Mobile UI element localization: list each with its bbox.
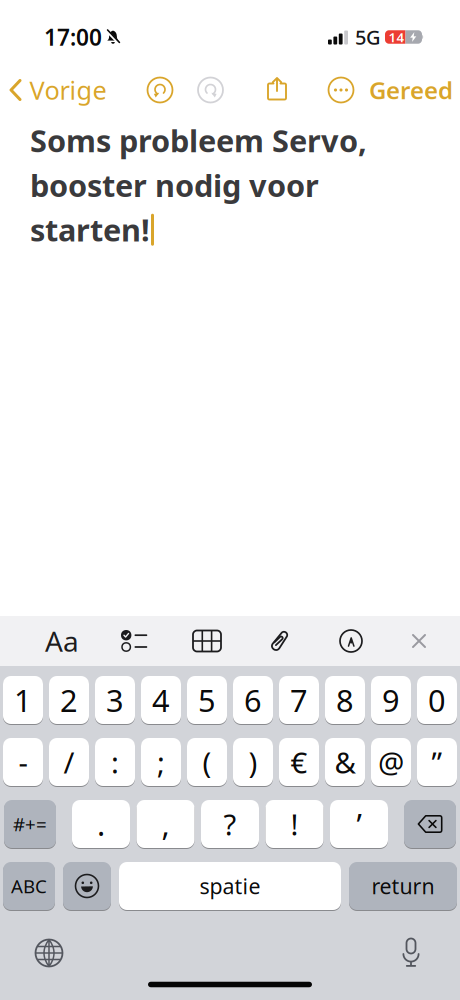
staticText: 6 (244, 680, 262, 720)
button[interactable]: Checklist (112, 619, 156, 663)
staticText: 3 (106, 680, 124, 720)
button[interactable]: 6 (233, 675, 273, 725)
button[interactable]: #+= (4, 799, 56, 849)
button[interactable]: ( (187, 737, 227, 787)
button[interactable]: & (325, 737, 365, 787)
staticText: 14 (388, 28, 404, 46)
button[interactable]: Markup (329, 619, 373, 663)
staticText: ) (248, 742, 257, 781)
button[interactable]: Attach (258, 619, 302, 663)
button[interactable]: Gereed (369, 70, 453, 110)
button[interactable]: : (95, 737, 135, 787)
button[interactable]: ; (141, 737, 181, 787)
button[interactable]: Next keyboard (27, 931, 71, 975)
button[interactable]: Table (185, 619, 229, 663)
button[interactable]: ’ (330, 799, 388, 849)
button[interactable]: More (324, 73, 358, 107)
button[interactable]: 8 (325, 675, 365, 725)
staticText: spatie (199, 872, 260, 900)
staticText: 1 (14, 680, 32, 720)
button[interactable]: ! (265, 799, 323, 849)
staticText: 5G (355, 24, 381, 50)
staticText: 4 (152, 680, 170, 720)
button[interactable]: Delete (404, 799, 456, 849)
staticText: ’ (356, 804, 361, 844)
button[interactable]: 3 (95, 675, 135, 725)
staticText: Vorige (29, 73, 106, 107)
button[interactable]: return (349, 861, 457, 911)
button[interactable]: Vorige (9, 70, 106, 110)
staticText: booster nodig voor (30, 165, 319, 205)
staticText: @ (378, 742, 404, 781)
staticText: Aa (45, 622, 79, 660)
button[interactable]: Undo (143, 73, 177, 107)
staticText: ! (290, 804, 298, 843)
staticText: 0 (428, 680, 446, 720)
button[interactable]: ? (201, 799, 259, 849)
staticText: 9 (382, 680, 400, 720)
staticText: € (290, 742, 307, 781)
button[interactable]: 2 (49, 675, 89, 725)
staticText: #+= (13, 812, 47, 836)
button[interactable]: Dictate (389, 930, 433, 974)
staticText: / (63, 742, 74, 781)
button[interactable]: 0 (417, 675, 457, 725)
staticText: : (111, 742, 119, 781)
staticText: starten! (30, 209, 150, 250)
button[interactable]: ” (417, 737, 457, 787)
button[interactable]: @ (371, 737, 411, 787)
button[interactable]: 1 (3, 675, 43, 725)
button[interactable]: 7 (279, 675, 319, 725)
button[interactable]: 4 (141, 675, 181, 725)
staticText: ” (431, 742, 442, 781)
button[interactable]: , (136, 799, 194, 849)
button[interactable]: € (279, 737, 319, 787)
button[interactable]: ABC (3, 861, 55, 911)
button[interactable]: ) (233, 737, 273, 787)
button[interactable]: Emoji (63, 861, 111, 911)
button[interactable]: Formatting (40, 619, 84, 663)
button[interactable]: spatie (119, 861, 341, 911)
button[interactable]: - (3, 737, 43, 787)
button[interactable]: 9 (371, 675, 411, 725)
staticText: ABC (11, 874, 47, 898)
staticText: Gereed (369, 74, 453, 106)
staticText: 7 (290, 680, 308, 720)
staticText: , (161, 804, 169, 844)
staticText: 2 (60, 680, 78, 720)
button[interactable]: Redo (193, 73, 227, 107)
staticText: & (334, 742, 355, 781)
button[interactable]: 5 (187, 675, 227, 725)
staticText: Soms probleem Servo, (30, 120, 367, 161)
staticText: 5 (198, 680, 216, 720)
staticText: return (371, 872, 434, 900)
button[interactable]: . (72, 799, 130, 849)
staticText: ; (157, 742, 165, 781)
button[interactable]: Dismiss (399, 619, 439, 663)
staticText: ? (223, 804, 236, 843)
staticText: 8 (336, 680, 354, 720)
staticText: - (18, 742, 27, 781)
button[interactable]: Share (262, 74, 292, 104)
staticText: . (97, 804, 105, 844)
staticText: 17:00 (44, 22, 102, 52)
button[interactable]: / (49, 737, 89, 787)
staticText: ( (202, 742, 211, 781)
